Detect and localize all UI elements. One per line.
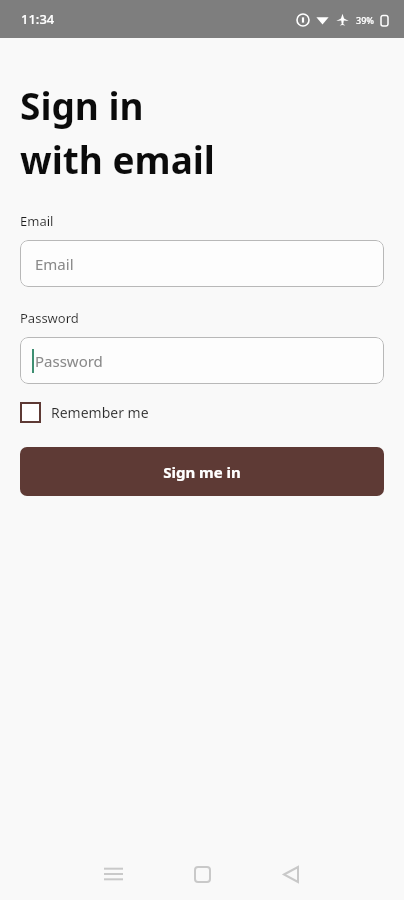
staticText: Password [20,309,79,327]
staticText: 39% [356,14,374,26]
button[interactable]: Password [20,337,384,384]
button[interactable]: Back [269,852,313,896]
button[interactable]: Sign me in [20,447,384,496]
staticText: Sign in [20,80,144,130]
staticText: Sign me in [163,462,241,482]
staticText: with email [20,134,215,184]
button[interactable]: Remember me [20,400,157,425]
staticText: Password [35,351,103,371]
staticText: Email [35,254,74,274]
staticText: 11:34 [21,10,55,28]
staticText: Email [20,212,54,230]
staticText: Remember me [51,403,149,422]
button[interactable]: Recent apps [91,852,135,896]
button[interactable]: Email [20,240,384,287]
button[interactable]: Home [180,852,224,896]
